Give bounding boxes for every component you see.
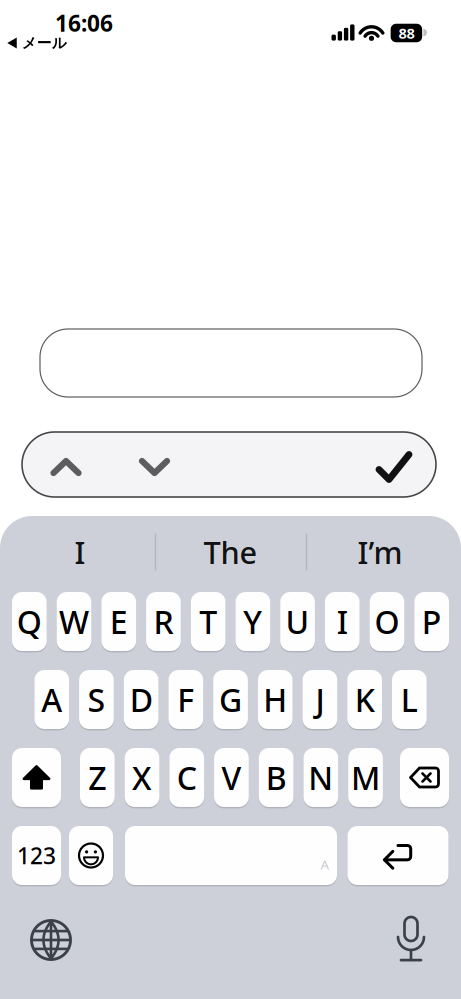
button[interactable]: メール	[7, 34, 67, 52]
staticText: Q	[17, 600, 42, 643]
button[interactable]: Next keyboard	[31, 920, 70, 959]
staticText: E	[110, 600, 128, 643]
button[interactable]: Space	[125, 825, 337, 886]
staticText: T	[199, 600, 217, 643]
button[interactable]: I	[325, 591, 360, 652]
button[interactable]: E	[101, 591, 136, 652]
button[interactable]: S	[79, 669, 114, 730]
button[interactable]	[40, 329, 422, 397]
button[interactable]: P	[414, 591, 449, 652]
staticText: L	[401, 678, 418, 721]
staticText: A	[320, 855, 329, 873]
staticText: 16:06	[55, 8, 113, 38]
staticText: J	[315, 678, 324, 721]
button[interactable]: Done	[366, 439, 422, 495]
staticText: C	[177, 756, 197, 799]
button[interactable]: A	[34, 669, 69, 730]
staticText: G	[219, 678, 242, 721]
button[interactable]: Y	[235, 591, 270, 652]
staticText: S	[87, 678, 105, 721]
button[interactable]: Return	[347, 825, 448, 886]
staticText: The	[203, 532, 257, 572]
button[interactable]: Shift	[12, 747, 61, 808]
button[interactable]: H	[258, 669, 293, 730]
button[interactable]: O	[370, 591, 404, 652]
button[interactable]: I’m	[310, 525, 450, 579]
button[interactable]: Z	[80, 747, 115, 808]
staticText: Z	[88, 756, 106, 799]
button[interactable]: D	[124, 669, 158, 730]
staticText: W	[59, 600, 89, 643]
button[interactable]: Delete	[400, 747, 449, 808]
button[interactable]: Q	[12, 591, 47, 652]
button[interactable]: N	[303, 747, 338, 808]
button[interactable]: W	[57, 591, 91, 652]
button[interactable]: V	[214, 747, 249, 808]
button[interactable]: Dictation	[397, 915, 425, 961]
button[interactable]: R	[146, 591, 181, 652]
button[interactable]: F	[168, 669, 203, 730]
staticText: B	[266, 756, 287, 799]
staticText: Y	[243, 600, 262, 643]
staticText: R	[153, 600, 173, 643]
button[interactable]: Previous field	[38, 439, 94, 495]
staticText: メール	[22, 34, 67, 52]
button[interactable]: Next field	[126, 439, 182, 495]
staticText: 123	[17, 840, 56, 870]
staticText: K	[355, 678, 375, 721]
staticText: I	[74, 532, 85, 572]
staticText: P	[422, 600, 442, 643]
staticText: A	[41, 678, 62, 721]
button[interactable]: X	[125, 747, 159, 808]
staticText: V	[221, 756, 241, 799]
button[interactable]: C	[169, 747, 204, 808]
staticText: 88	[398, 23, 414, 43]
staticText: N	[308, 756, 333, 799]
staticText: X	[132, 756, 152, 799]
staticText: I’m	[357, 532, 402, 572]
staticText: U	[286, 600, 310, 643]
staticText: F	[177, 678, 194, 721]
button[interactable]: I	[10, 525, 150, 579]
button[interactable]: J	[303, 669, 337, 730]
button[interactable]: G	[213, 669, 248, 730]
staticText: D	[130, 678, 153, 721]
button[interactable]: M	[348, 747, 383, 808]
button[interactable]: The	[160, 525, 300, 579]
button[interactable]: Numbers	[12, 825, 61, 886]
button[interactable]: K	[347, 669, 382, 730]
button[interactable]: Emoji	[69, 825, 113, 886]
staticText: M	[351, 756, 380, 799]
button[interactable]: U	[280, 591, 315, 652]
button[interactable]: T	[191, 591, 225, 652]
button[interactable]: L	[392, 669, 427, 730]
button[interactable]: B	[259, 747, 293, 808]
staticText: O	[374, 600, 399, 643]
staticText: I	[337, 600, 348, 643]
staticText: H	[263, 678, 287, 721]
